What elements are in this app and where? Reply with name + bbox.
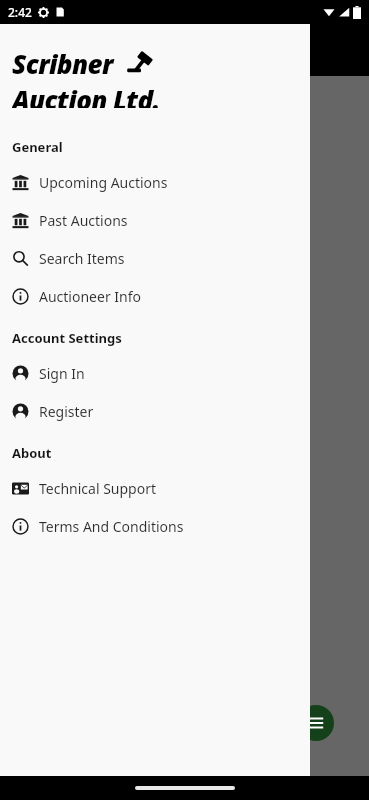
button[interactable]: Search Items	[0, 239, 310, 277]
button[interactable]: Register	[0, 392, 310, 430]
staticText: Past Auctions	[39, 211, 128, 230]
staticText: About	[12, 444, 52, 462]
button[interactable]: List	[298, 705, 334, 741]
staticText: Register	[39, 402, 94, 421]
button[interactable]: Technical Support	[0, 469, 310, 507]
staticText: Account Settings	[12, 329, 122, 347]
button[interactable]: Sign In	[0, 354, 310, 392]
staticText: Auctioneer Info	[39, 287, 142, 306]
staticText: Search Items	[39, 249, 125, 268]
button[interactable]: Auctioneer Info	[0, 277, 310, 315]
button[interactable]: Past Auctions	[0, 201, 310, 239]
staticText: Technical Support	[39, 479, 157, 498]
staticText: Upcoming Auctions	[39, 173, 168, 192]
staticText: 2:42	[8, 4, 32, 20]
staticText: General	[12, 138, 63, 156]
button[interactable]: Terms And Conditions	[0, 507, 310, 545]
staticText: Sign In	[39, 364, 85, 383]
staticText: Auction Ltd.	[12, 82, 160, 108]
staticText: Scribner	[12, 46, 113, 81]
button[interactable]: Upcoming Auctions	[0, 163, 310, 201]
staticText: Terms And Conditions	[39, 517, 184, 536]
